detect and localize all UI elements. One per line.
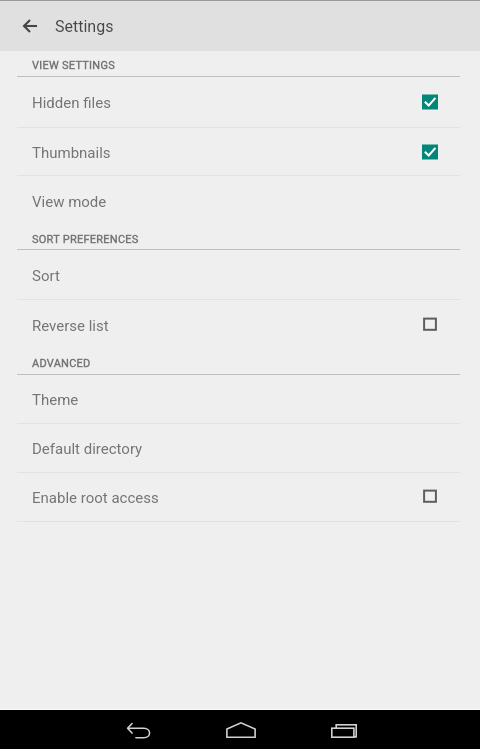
staticText: Settings: [55, 17, 114, 36]
staticText: View mode: [32, 193, 107, 211]
button[interactable]: Reverse list: [0, 300, 480, 349]
staticText: Default directory: [32, 440, 143, 458]
button[interactable]: Thumbnails: [0, 128, 480, 175]
staticText: Theme: [32, 391, 79, 409]
button[interactable]: View mode: [0, 176, 480, 225]
button[interactable]: Home: [189, 710, 292, 749]
button[interactable]: Hidden files: [0, 77, 480, 127]
staticText: SORT PREFERENCES: [32, 233, 139, 246]
staticText: Sort: [32, 267, 60, 285]
staticText: ADVANCED: [32, 357, 91, 370]
button[interactable]: Sort: [0, 250, 480, 299]
staticText: Hidden files: [32, 94, 111, 112]
button[interactable]: Back: [86, 710, 189, 749]
button[interactable]: Recent apps: [292, 710, 395, 749]
staticText: Thumbnails: [32, 144, 111, 162]
button[interactable]: Default directory: [0, 424, 480, 472]
staticText: Enable root access: [32, 489, 159, 507]
staticText: Reverse list: [32, 317, 109, 335]
button[interactable]: Theme: [0, 375, 480, 423]
button[interactable]: Enable root access: [0, 473, 480, 521]
button[interactable]: Navigate up: [8, 4, 52, 48]
staticText: VIEW SETTINGS: [32, 59, 115, 72]
